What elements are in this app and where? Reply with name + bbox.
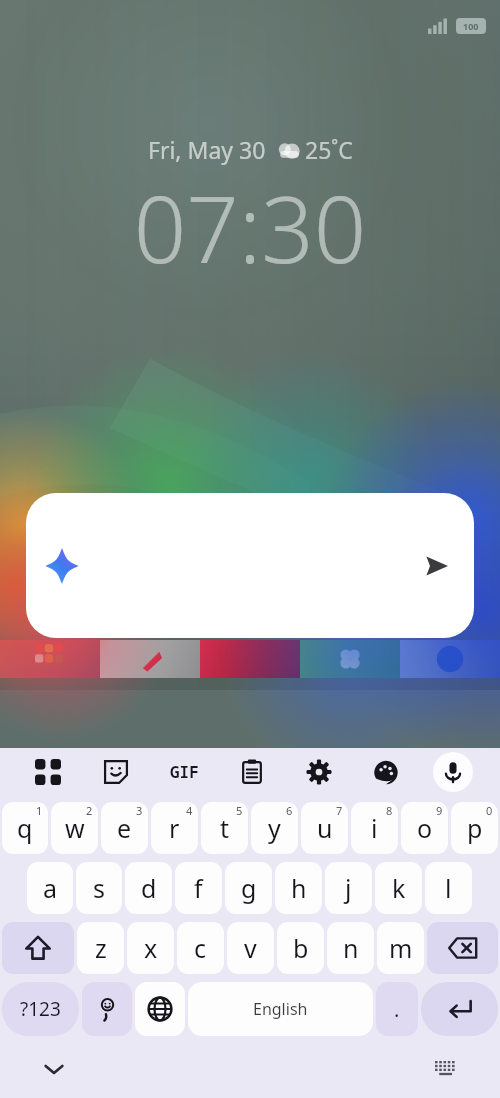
button[interactable]: GIF — [150, 748, 218, 796]
button[interactable]: Voice input — [433, 752, 473, 792]
button[interactable]: h — [275, 862, 322, 914]
staticText: z — [95, 931, 107, 965]
button[interactable]: y — [251, 802, 298, 854]
button[interactable]: a — [27, 862, 73, 914]
button[interactable]: j — [325, 862, 372, 914]
button[interactable]: Clipboard — [218, 748, 285, 796]
staticText: 5 — [236, 803, 243, 818]
staticText: 07:30 — [0, 165, 500, 290]
staticText: d — [141, 871, 157, 905]
button[interactable]: r — [151, 802, 198, 854]
staticText: h — [291, 871, 307, 905]
staticText: 3 — [136, 803, 143, 818]
staticText: r — [169, 811, 180, 845]
button[interactable]: x — [127, 922, 174, 974]
staticText: p — [467, 811, 483, 845]
button[interactable]: i — [351, 802, 398, 854]
staticText: b — [293, 931, 309, 965]
button[interactable]: Switch keyboard — [426, 1049, 466, 1089]
button[interactable]: g — [225, 862, 272, 914]
staticText: 100 — [463, 20, 479, 32]
button[interactable]: u — [301, 802, 348, 854]
button[interactable]: w — [51, 802, 98, 854]
staticText: English — [253, 998, 308, 1020]
button[interactable]: k — [375, 862, 422, 914]
button[interactable]: z — [77, 922, 124, 974]
staticText: w — [65, 811, 85, 845]
staticText: g — [241, 871, 257, 905]
button[interactable]: e — [101, 802, 148, 854]
button[interactable]: Themes — [352, 748, 419, 796]
button[interactable]: Hide keyboard — [34, 1049, 74, 1089]
button[interactable]: d — [125, 862, 172, 914]
button[interactable]: English — [188, 982, 373, 1036]
button[interactable]: b — [277, 922, 324, 974]
staticText: 1 — [36, 803, 43, 818]
button[interactable]: Send — [412, 542, 460, 590]
button[interactable]: l — [425, 862, 472, 914]
staticText: x — [144, 931, 158, 965]
staticText: m — [389, 931, 413, 965]
staticText: 25˚C — [305, 134, 353, 165]
staticText: GIF — [170, 761, 199, 783]
button[interactable]: ?123 — [2, 982, 79, 1036]
button[interactable]: Settings — [285, 748, 352, 796]
staticText: 9 — [436, 803, 443, 818]
staticText: j — [345, 871, 352, 905]
button[interactable]: t — [201, 802, 248, 854]
button[interactable]: p — [451, 802, 498, 854]
button[interactable]: Shift — [2, 922, 74, 974]
staticText: k — [392, 871, 406, 905]
button[interactable]: o — [401, 802, 448, 854]
button[interactable]: Backspace — [427, 922, 498, 974]
staticText: a — [43, 871, 58, 905]
staticText: u — [317, 811, 333, 845]
staticText: 0 — [486, 803, 493, 818]
staticText: y — [268, 811, 281, 845]
button[interactable]: Emoji — [82, 982, 132, 1036]
staticText: v — [244, 931, 257, 965]
staticText: 6 — [286, 803, 293, 818]
staticText: 7 — [336, 803, 343, 818]
staticText: . — [394, 996, 400, 1023]
staticText: t — [220, 811, 230, 845]
staticText: l — [445, 871, 452, 905]
button[interactable]: . — [376, 982, 418, 1036]
staticText: o — [417, 811, 433, 845]
button[interactable]: c — [177, 922, 224, 974]
staticText: e — [117, 811, 132, 845]
button[interactable]: Change language — [135, 982, 185, 1036]
staticText: 8 — [386, 803, 393, 818]
button[interactable]: q — [2, 802, 48, 854]
button[interactable]: v — [227, 922, 274, 974]
button[interactable]: s — [76, 862, 122, 914]
button[interactable]: f — [175, 862, 222, 914]
button[interactable]: Stickers — [82, 748, 150, 796]
staticText: f — [194, 871, 203, 905]
button[interactable]: Apps — [14, 748, 82, 796]
staticText: Fri, May 30 — [148, 134, 266, 165]
staticText: 4 — [186, 803, 193, 818]
button[interactable]: m — [377, 922, 424, 974]
staticText: ?123 — [20, 996, 61, 1022]
staticText: s — [93, 871, 105, 905]
staticText: q — [17, 811, 33, 845]
button[interactable]: Gemini — [26, 493, 474, 638]
other: Gemini — [44, 548, 80, 584]
staticText: c — [194, 931, 207, 965]
button[interactable]: Enter — [421, 982, 498, 1036]
staticText: i — [371, 811, 378, 845]
staticText: n — [343, 931, 359, 965]
staticText: 2 — [86, 803, 93, 818]
button[interactable]: n — [327, 922, 374, 974]
